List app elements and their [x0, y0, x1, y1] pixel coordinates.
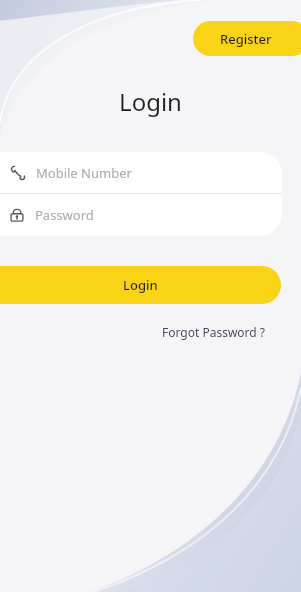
button[interactable]: Forgot Password ? — [160, 322, 268, 342]
button[interactable]: Mobile Number — [0, 152, 282, 193]
staticText: Password — [35, 206, 94, 224]
button[interactable]: Password — [0, 194, 282, 236]
staticText: Login — [123, 276, 158, 294]
staticText: Forgot Password ? — [162, 324, 266, 340]
button[interactable]: Register — [193, 21, 301, 56]
staticText: Login — [0, 85, 301, 118]
button[interactable]: Login — [0, 266, 281, 304]
staticText: Register — [220, 30, 272, 48]
staticText: Mobile Number — [36, 164, 132, 182]
